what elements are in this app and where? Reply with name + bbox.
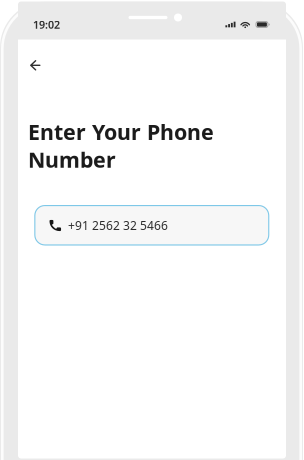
button[interactable]: +91 2562 32 5466 — [34, 205, 269, 245]
staticText: Number — [28, 145, 116, 174]
staticText: Enter Your Phone — [28, 117, 214, 146]
staticText: 19:02 — [33, 17, 60, 32]
button[interactable]: Back — [19, 51, 51, 80]
staticText: +91 2562 32 5466 — [68, 217, 168, 233]
